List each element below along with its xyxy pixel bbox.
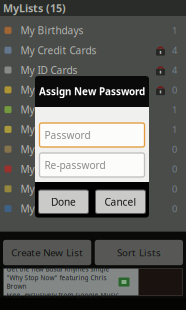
button[interactable]: My Notes [0,119,186,139]
staticText: Free, exclusively from Google Music [6,291,118,299]
button[interactable]: My Keys [0,80,186,100]
staticText: My Notes [20,122,66,136]
staticText: 0 [172,202,177,215]
staticText: My Lists [20,103,59,116]
button[interactable]: My Photos [0,159,186,179]
staticText: 1 [172,123,177,136]
staticText: My Sites [20,202,61,215]
button[interactable]: Cancel [95,190,145,213]
button[interactable]: My Recipes [0,179,186,199]
button[interactable]: Sort Lists [95,240,183,265]
staticText: Re-password [44,158,105,172]
staticText: 0 [172,83,177,96]
staticText: 4 [172,44,177,56]
button[interactable]: My Credit Cards [0,40,186,60]
staticText: Cancel [104,195,136,209]
staticText: My Keys [20,83,59,97]
staticText: Assign New Password [39,85,145,98]
button[interactable]: Get the new Busta Rhymes single [3,268,182,295]
staticText: Get the new Busta Rhymes single [6,265,109,273]
staticText: 1 [172,103,177,116]
staticText: Sort Lists [117,246,161,259]
staticText: My Recipes [20,182,74,196]
staticText: 1 [172,24,177,37]
button[interactable]: My ID Cards [0,60,186,80]
staticText: My Photos [20,162,70,176]
button[interactable]: My Sites [0,199,186,218]
staticText: 0 [172,163,177,175]
staticText: Create New List [11,246,83,259]
staticText: 4 [172,64,177,76]
staticText: Done [51,195,76,209]
button[interactable]: Done [38,190,88,213]
staticText: My Birthdays [20,23,83,37]
button[interactable]: My Birthdays [0,20,186,40]
staticText: My Passwords [20,142,88,156]
staticText: 0 [172,143,177,155]
staticText: 0 [172,182,177,195]
staticText: My ID Cards [20,63,77,77]
staticText: Password [44,128,90,142]
button[interactable]: Create New List [3,240,91,265]
button[interactable]: My Passwords [0,139,186,159]
staticText: "Why Stop Now" featuring Chris Brown [6,273,106,291]
staticText: My Credit Cards [20,43,96,57]
button[interactable]: My Lists [0,100,186,119]
staticText: MyLists (15) [3,1,66,15]
